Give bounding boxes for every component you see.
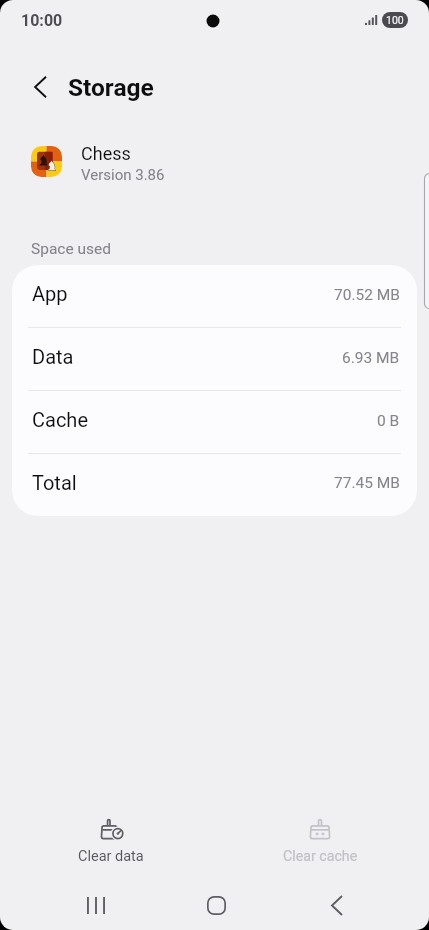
staticText: 0 B xyxy=(377,412,400,430)
staticText: 77.45 MB xyxy=(334,474,400,492)
staticText: Cache xyxy=(32,408,88,431)
staticText: Clear data xyxy=(78,848,144,865)
staticText: Clear cache xyxy=(283,848,358,865)
staticText: 70.52 MB xyxy=(334,286,400,304)
staticText: Space used xyxy=(31,240,112,258)
button[interactable]: Clear cache xyxy=(270,812,370,868)
staticText: Storage xyxy=(68,73,154,102)
button[interactable]: Total xyxy=(12,454,417,516)
button[interactable]: Recent apps xyxy=(56,883,136,927)
staticText: 6.93 MB xyxy=(342,349,400,367)
staticText: App xyxy=(32,282,68,305)
button[interactable]: App xyxy=(12,265,417,328)
button[interactable]: Back xyxy=(297,883,377,927)
staticText: Total xyxy=(32,471,77,494)
button[interactable]: Cache xyxy=(12,391,417,454)
staticText: Chess xyxy=(81,143,131,164)
button[interactable]: Home xyxy=(176,883,256,927)
button[interactable]: Data xyxy=(12,328,417,391)
staticText: 10:00 xyxy=(21,11,63,30)
staticText: 100 xyxy=(386,14,404,26)
staticText: Data xyxy=(32,345,74,368)
button[interactable]: Clear data xyxy=(61,812,161,868)
staticText: Version 3.86 xyxy=(81,166,165,184)
button[interactable]: Navigate up xyxy=(16,61,68,113)
